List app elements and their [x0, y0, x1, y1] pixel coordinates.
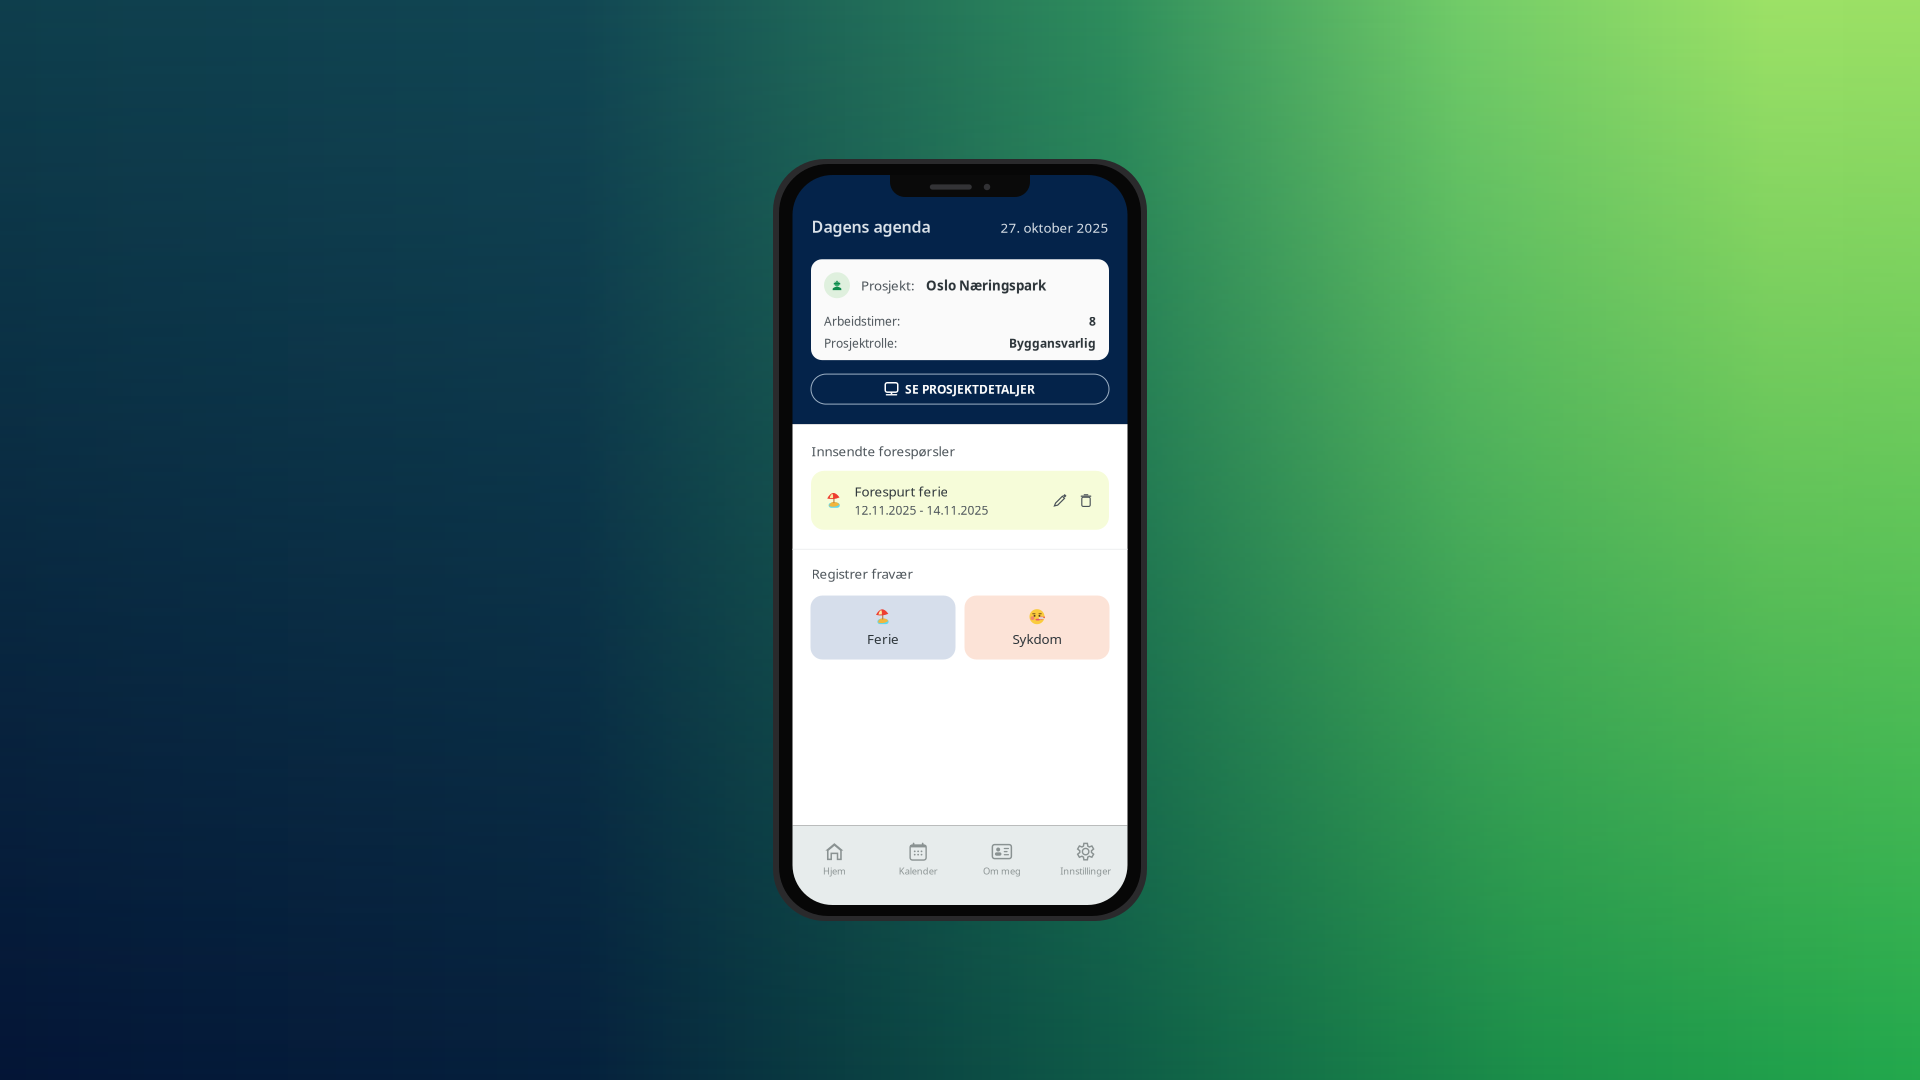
staticText: Arbeidstimer:: [824, 313, 900, 329]
staticText: Prosjektrolle:: [824, 335, 897, 351]
staticText: 12.11.2025 - 14.11.2025: [854, 502, 988, 518]
button[interactable]: Kalender: [876, 838, 960, 881]
staticText: Kalender: [899, 865, 938, 877]
button[interactable]: Sykdom: [964, 595, 1109, 659]
button[interactable]: Rediger forespørsel: [1048, 488, 1072, 512]
staticText: Prosjekt:: [861, 276, 915, 294]
button[interactable]: Hjem: [792, 838, 876, 881]
staticText: 27. oktober 2025: [1000, 219, 1108, 236]
button[interactable]: Innstillinger: [1044, 838, 1128, 881]
staticText: Hjem: [823, 865, 846, 877]
staticText: Sykdom: [1012, 630, 1061, 648]
staticText: 8: [1089, 313, 1096, 329]
staticText: Oslo Næringspark: [926, 276, 1046, 294]
button[interactable]: SE PROSJEKTDETALJER: [811, 374, 1109, 404]
staticText: Ferie: [867, 630, 899, 648]
button[interactable]: Slett forespørsel: [1074, 488, 1098, 512]
staticText: Om meg: [983, 865, 1021, 877]
staticText: SE PROSJEKTDETALJER: [905, 381, 1035, 397]
staticText: Byggansvarlig: [1009, 335, 1096, 351]
button[interactable]: Om meg: [960, 838, 1044, 881]
button[interactable]: Ferie: [810, 595, 955, 659]
button[interactable]: Forespurt ferie: [811, 471, 1109, 530]
staticText: Innstillinger: [1060, 865, 1111, 877]
staticText: Innsendte forespørsler: [811, 442, 955, 460]
staticText: Registrer fravær: [811, 565, 913, 582]
staticText: Dagens agenda: [811, 216, 930, 237]
staticText: Forespurt ferie: [854, 482, 948, 500]
